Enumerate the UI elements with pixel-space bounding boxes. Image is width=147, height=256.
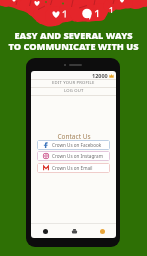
- staticText: EASY AND SEVERAL WAYS: [14, 29, 133, 42]
- button[interactable]: Profile: [88, 224, 116, 238]
- staticText: LOG OUT: [64, 88, 84, 94]
- button[interactable]: EDIT YOUR PROFILE: [31, 79, 116, 87]
- button[interactable]: Info: [31, 224, 60, 238]
- button[interactable]: Crown Us on Instagram: [37, 151, 110, 161]
- button[interactable]: LOG OUT: [31, 87, 116, 95]
- staticText: 12000: [92, 72, 108, 79]
- staticText: Contact Us: [57, 132, 91, 141]
- staticText: Crown Us on Email: [52, 165, 93, 171]
- staticText: Crown Us on Facebook: [52, 142, 102, 148]
- button[interactable]: Store: [60, 224, 88, 238]
- staticText: EDIT YOUR PROFILE: [52, 80, 95, 86]
- button[interactable]: Crown Us on Email: [37, 163, 110, 173]
- button[interactable]: Crown Us on Facebook: [37, 140, 110, 150]
- staticText: TO COMMUNICATE WITH US: [8, 40, 139, 53]
- staticText: Crown Us on Instagram: [52, 153, 103, 159]
